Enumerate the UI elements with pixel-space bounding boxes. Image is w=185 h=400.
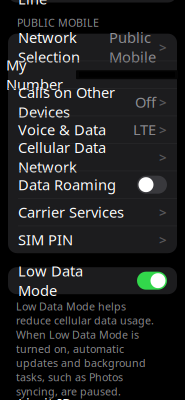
staticText: My Number bbox=[6, 55, 63, 94]
button[interactable]: Voice & Data bbox=[8, 116, 177, 143]
button[interactable]: SIM PIN bbox=[8, 226, 177, 253]
staticText: Limit IP Address Tracking bbox=[18, 394, 76, 400]
staticText: > bbox=[159, 38, 167, 56]
button[interactable]: My Number bbox=[8, 61, 177, 88]
staticText: LTE bbox=[133, 120, 156, 139]
staticText: Off bbox=[135, 92, 156, 112]
staticText: Data Roaming bbox=[18, 175, 116, 194]
staticText: Voice & Data bbox=[18, 120, 106, 139]
staticText: > bbox=[159, 93, 167, 111]
staticText: Public Mobile bbox=[109, 28, 156, 67]
staticText: Calls on Other Devices bbox=[18, 83, 115, 122]
staticText: Low Data Mode bbox=[18, 261, 83, 300]
staticText: Network Selection bbox=[18, 28, 80, 67]
staticText: PUBLIC MOBILE bbox=[17, 15, 99, 30]
button[interactable]: Turn On This Line bbox=[8, 0, 177, 2]
staticText: > bbox=[159, 148, 167, 166]
staticText: > bbox=[159, 121, 167, 138]
button[interactable]: Network Selection bbox=[8, 34, 177, 61]
button[interactable]: Data Roaming bbox=[8, 171, 177, 198]
staticText: Cellular Data Network bbox=[18, 138, 106, 177]
button[interactable]: Calls on Other Devices bbox=[8, 89, 177, 116]
button[interactable]: Low Data Mode bbox=[8, 267, 177, 294]
button[interactable]: Carrier Services bbox=[8, 199, 177, 226]
staticText: Turn On This Line bbox=[18, 0, 105, 8]
staticText: > bbox=[159, 203, 167, 221]
button[interactable]: Cellular Data Network bbox=[8, 144, 177, 171]
staticText: > bbox=[159, 231, 167, 248]
staticText: Low Data Mode helps reduce cellular data… bbox=[16, 299, 154, 398]
staticText: Carrier Services bbox=[18, 202, 124, 222]
staticText: SIM PIN bbox=[18, 230, 73, 249]
